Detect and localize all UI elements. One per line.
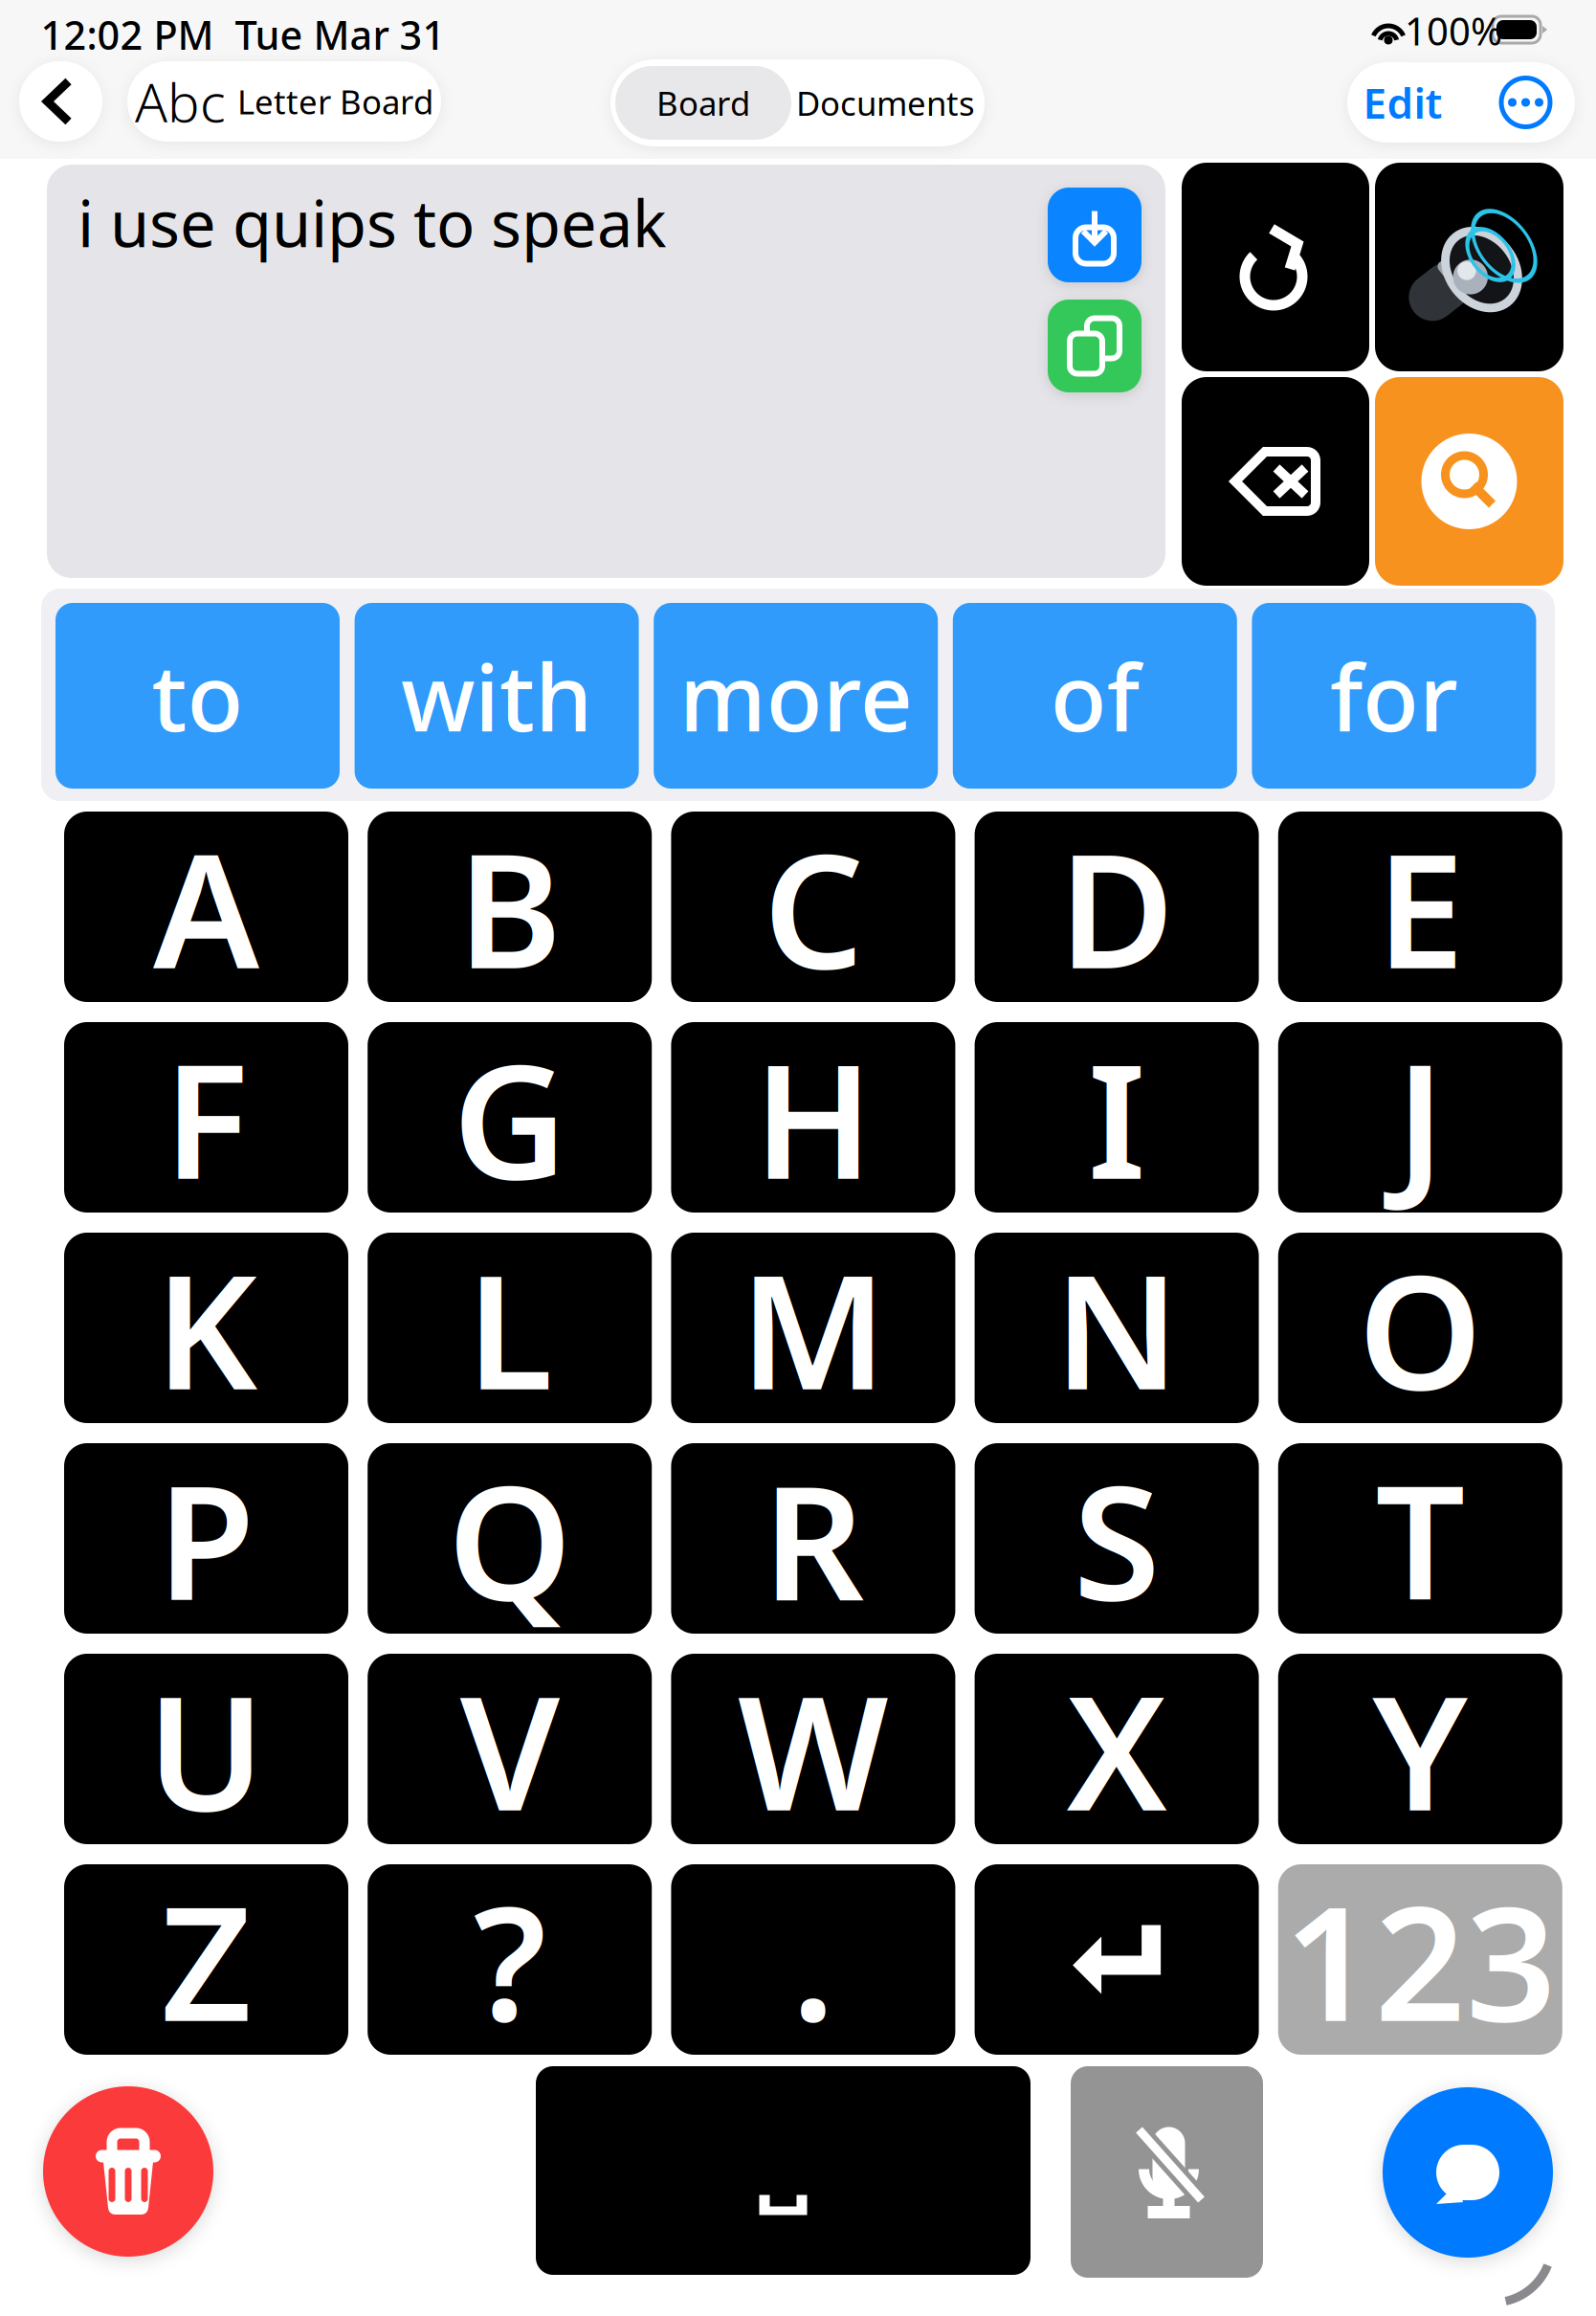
- staticText: G: [452, 1012, 567, 1222]
- button[interactable]: N: [975, 1223, 1259, 1433]
- button[interactable]: R: [671, 1433, 955, 1643]
- button[interactable]: with: [355, 603, 639, 789]
- button[interactable]: Edit: [1361, 64, 1445, 141]
- staticText: for: [1330, 635, 1458, 757]
- button[interactable]: M: [671, 1223, 955, 1433]
- button[interactable]: Documents: [791, 66, 980, 140]
- staticText: of: [1050, 635, 1139, 757]
- staticText: to: [152, 635, 244, 757]
- staticText: P: [157, 1433, 255, 1643]
- staticText: .: [791, 1854, 835, 2065]
- staticText: D: [1059, 802, 1175, 1012]
- staticText: J: [1396, 1012, 1445, 1222]
- staticText: Board: [656, 81, 750, 125]
- staticText: i use quips to speak: [78, 180, 667, 265]
- button[interactable]: C: [671, 802, 955, 1012]
- button[interactable]: .: [671, 1854, 955, 2065]
- staticText: Y: [1372, 1644, 1468, 1854]
- button[interactable]: Save: [1048, 188, 1142, 282]
- button[interactable]: S: [975, 1433, 1259, 1643]
- staticText: A: [153, 802, 259, 1012]
- button[interactable]: Y: [1278, 1644, 1562, 1854]
- button[interactable]: Board: [615, 66, 791, 140]
- button[interactable]: D: [975, 802, 1259, 1012]
- button[interactable]: Z: [64, 1854, 348, 2065]
- staticText: V: [460, 1644, 559, 1854]
- staticText: Abc: [135, 66, 226, 137]
- button[interactable]: V: [368, 1644, 652, 1854]
- staticText: ?: [473, 1854, 546, 2065]
- staticText: B: [458, 802, 562, 1012]
- button[interactable]: A: [64, 802, 348, 1012]
- button[interactable]: more: [654, 603, 938, 789]
- staticText: Z: [161, 1854, 252, 2065]
- staticText: F: [164, 1012, 249, 1222]
- staticText: K: [155, 1223, 257, 1433]
- staticText: E: [1376, 802, 1464, 1012]
- button[interactable]: W: [671, 1644, 955, 1854]
- staticText: W: [738, 1644, 889, 1854]
- button[interactable]: B: [368, 802, 652, 1012]
- button[interactable]: T: [1278, 1433, 1562, 1643]
- button[interactable]: ?: [368, 1854, 652, 2065]
- staticText: 123: [1284, 1854, 1557, 2065]
- button[interactable]: More options: [1501, 78, 1550, 127]
- staticText: Edit: [1363, 74, 1442, 130]
- staticText: 100%: [1405, 5, 1502, 56]
- staticText: O: [1358, 1223, 1482, 1433]
- button[interactable]: Redo: [1182, 163, 1369, 371]
- staticText: Documents: [796, 81, 975, 125]
- staticText: H: [753, 1012, 873, 1222]
- button[interactable]: Delete: [1182, 377, 1369, 586]
- button[interactable]: 123: [1278, 1854, 1562, 2065]
- staticText: L: [467, 1223, 553, 1433]
- staticText: with: [401, 635, 592, 757]
- button[interactable]: H: [671, 1012, 955, 1222]
- button[interactable]: to: [55, 603, 340, 789]
- staticText: U: [147, 1644, 266, 1854]
- staticText: Letter Board: [237, 79, 433, 123]
- button[interactable]: for: [1252, 603, 1536, 789]
- staticText: C: [763, 802, 863, 1012]
- button[interactable]: Search: [1375, 377, 1563, 586]
- button[interactable]: Space: [536, 2066, 1031, 2275]
- staticText: X: [1066, 1644, 1167, 1854]
- button[interactable]: Messages: [1383, 2087, 1553, 2258]
- button[interactable]: Microphone off: [1071, 2066, 1263, 2278]
- button[interactable]: J: [1278, 1012, 1562, 1222]
- button[interactable]: K: [64, 1223, 348, 1433]
- button[interactable]: G: [368, 1012, 652, 1222]
- button[interactable]: X: [975, 1644, 1259, 1854]
- button[interactable]: Speak: [1375, 163, 1563, 371]
- button[interactable]: I: [975, 1012, 1259, 1222]
- staticText: Tue Mar 31: [235, 8, 445, 61]
- button[interactable]: Abc: [127, 61, 441, 142]
- button[interactable]: Copy: [1048, 300, 1142, 392]
- staticText: I: [1088, 1012, 1146, 1222]
- button[interactable]: Q: [368, 1433, 652, 1643]
- button[interactable]: Return: [975, 1864, 1259, 2055]
- button[interactable]: E: [1278, 802, 1562, 1012]
- button[interactable]: Clear text: [43, 2086, 213, 2257]
- button[interactable]: F: [64, 1012, 348, 1222]
- staticText: 12:02 PM: [41, 8, 214, 61]
- button[interactable]: of: [953, 603, 1237, 789]
- staticText: R: [763, 1433, 864, 1643]
- staticText: S: [1073, 1433, 1160, 1643]
- button[interactable]: P: [64, 1433, 348, 1643]
- staticText: T: [1375, 1433, 1465, 1643]
- staticText: Q: [448, 1433, 572, 1643]
- staticText: N: [1054, 1223, 1179, 1433]
- staticText: M: [740, 1223, 887, 1433]
- button[interactable]: L: [368, 1223, 652, 1433]
- button[interactable]: U: [64, 1644, 348, 1854]
- button[interactable]: Back: [19, 61, 102, 142]
- button[interactable]: O: [1278, 1223, 1562, 1433]
- staticText: more: [679, 635, 913, 757]
